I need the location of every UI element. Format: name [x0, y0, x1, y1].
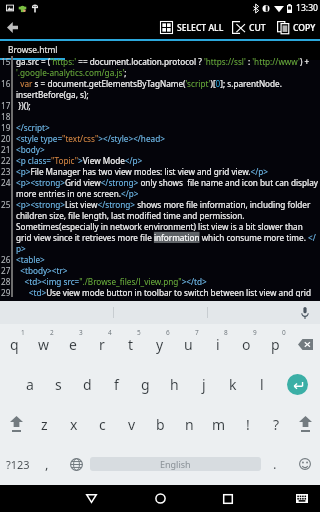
staticText: 25: [1, 199, 11, 210]
button[interactable]: Change language: [62, 444, 90, 484]
staticText: 26: [1, 254, 11, 265]
button[interactable]: COPY: [276, 16, 317, 39]
button[interactable]: Home: [137, 485, 183, 512]
staticText: <table>: [16, 254, 45, 265]
staticText: u: [184, 335, 193, 354]
staticText: a: [26, 375, 34, 394]
button[interactable]: SELECT ALL: [159, 16, 232, 39]
staticText: })();: [16, 100, 31, 111]
button[interactable]: l: [247, 364, 276, 404]
button[interactable]: h: [160, 364, 189, 404]
button[interactable]: Shift: [291, 404, 320, 444]
button[interactable]: Backspace: [290, 324, 320, 364]
staticText: f: [114, 375, 119, 394]
staticText: <p><strong>List view</strong> shows more…: [16, 199, 311, 210]
button[interactable]: Back: [0, 16, 24, 39]
button[interactable]: y: [145, 324, 174, 364]
staticText: 23: [1, 166, 11, 177]
staticText: grid view since it retrieves more file i…: [16, 232, 316, 243]
staticText: 21: [1, 144, 11, 155]
button[interactable]: Voice input: [290, 301, 320, 324]
button[interactable]: English: [90, 444, 261, 484]
button[interactable]: Back: [68, 485, 114, 512]
button[interactable]: o: [232, 324, 261, 364]
button[interactable]: x: [59, 404, 88, 444]
button[interactable]: m: [204, 404, 233, 444]
staticText: m: [212, 415, 226, 434]
staticText: '.google-analytics.com/ga.js';: [16, 67, 127, 78]
button[interactable]: z: [30, 404, 59, 444]
staticText: w: [38, 335, 50, 354]
staticText: 2: [50, 328, 54, 337]
staticText: 1: [21, 328, 25, 337]
staticText: 28: [1, 276, 11, 287]
button[interactable]: j: [189, 364, 218, 404]
staticText: 0: [282, 328, 286, 337]
staticText: 13:30: [296, 2, 318, 14]
button[interactable]: ?123: [2, 444, 33, 484]
staticText: <style type="text/css"></style></head>: [16, 133, 165, 144]
button[interactable]: u: [174, 324, 203, 364]
button[interactable]: v: [117, 404, 146, 444]
staticText: p>: [16, 243, 26, 254]
staticText: 15: [1, 56, 11, 67]
staticText: x: [70, 415, 78, 434]
button[interactable]: g: [131, 364, 160, 404]
staticText: 5: [137, 328, 141, 337]
staticText: 6: [166, 328, 170, 337]
staticText: 3: [79, 328, 83, 337]
staticText: 17: [1, 100, 11, 111]
button[interactable]: Hide keyboard: [290, 485, 314, 512]
staticText: d: [83, 375, 92, 394]
staticText: 16: [1, 78, 11, 89]
staticText: CUT: [249, 22, 266, 34]
button[interactable]: k: [218, 364, 247, 404]
button[interactable]: d: [73, 364, 102, 404]
staticText: b: [156, 415, 165, 434]
staticText: Sometimes(especially in network environm…: [16, 221, 303, 232]
staticText: !: [246, 415, 250, 434]
button[interactable]: Emoji: [289, 444, 320, 484]
button[interactable]: Shift: [1, 404, 31, 444]
button[interactable]: t: [116, 324, 145, 364]
button[interactable]: CUT: [231, 16, 267, 39]
staticText: COPY: [293, 22, 316, 34]
button[interactable]: ?: [262, 404, 291, 444]
staticText: j: [202, 375, 206, 394]
staticText: 24: [1, 177, 11, 188]
button[interactable]: Browse.html: [0, 39, 65, 60]
staticText: t: [128, 335, 134, 354]
button[interactable]: i: [203, 324, 232, 364]
button[interactable]: n: [175, 404, 204, 444]
button[interactable]: a: [15, 364, 44, 404]
button[interactable]: Recents: [205, 485, 251, 512]
button[interactable]: f: [102, 364, 131, 404]
button[interactable]: !: [233, 404, 262, 444]
button[interactable]: c: [88, 404, 117, 444]
staticText: e: [69, 335, 77, 354]
staticText: 19: [1, 122, 11, 133]
staticText: h: [170, 375, 179, 394]
button[interactable]: .: [261, 444, 289, 484]
staticText: r: [99, 335, 105, 354]
staticText: children size, file length, last modifie…: [16, 210, 245, 221]
button[interactable]: q: [0, 324, 29, 364]
staticText: <p><strong>Grid view</strong> only shows…: [16, 177, 318, 188]
staticText: 4: [108, 328, 112, 337]
staticText: <td><img src="./Browse_files/l_view.png"…: [16, 276, 207, 287]
button[interactable]: r: [87, 324, 116, 364]
staticText: s: [55, 375, 62, 394]
staticText: 20: [1, 133, 11, 144]
button[interactable]: e: [58, 324, 87, 364]
button[interactable]: w: [29, 324, 58, 364]
staticText: English: [160, 458, 191, 470]
button[interactable]: ,: [33, 444, 61, 484]
button[interactable]: b: [146, 404, 175, 444]
staticText: ,: [45, 455, 49, 473]
staticText: </script>: [16, 122, 50, 133]
button[interactable]: s: [44, 364, 73, 404]
button[interactable]: Enter: [282, 364, 312, 404]
staticText: v: [128, 415, 136, 434]
staticText: 18: [1, 111, 11, 122]
button[interactable]: p: [261, 324, 290, 364]
